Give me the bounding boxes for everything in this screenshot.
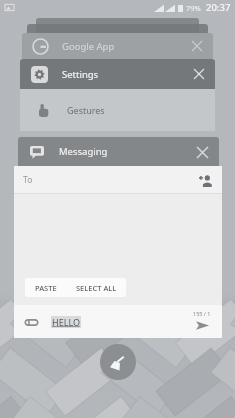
button[interactable]: Add recipient <box>194 169 216 191</box>
button[interactable]: Google App <box>22 33 213 59</box>
staticText: 155 / 1 <box>193 310 211 317</box>
staticText: To <box>23 174 33 186</box>
button[interactable]: Messaging <box>18 137 219 166</box>
staticText: Settings <box>62 68 99 81</box>
staticText: SELECT ALL <box>76 283 117 293</box>
staticText: HELLO <box>52 316 80 328</box>
button[interactable]: Gestures <box>20 89 215 131</box>
button[interactable]: PASTE <box>25 278 67 297</box>
button[interactable]: Close Messaging <box>189 139 215 165</box>
button[interactable] <box>27 24 208 52</box>
button[interactable]: Attach <box>19 310 43 334</box>
button[interactable]: Clear all <box>100 344 136 380</box>
button[interactable]: Close Google App <box>185 34 209 58</box>
button[interactable]: Send <box>185 305 219 338</box>
staticText: Gestures <box>67 104 105 116</box>
button[interactable]: Close Settings <box>187 62 211 86</box>
button[interactable]: HELLO <box>51 305 185 338</box>
button[interactable]: To <box>14 166 222 193</box>
staticText: Messaging <box>59 145 108 158</box>
staticText: PASTE <box>35 283 57 293</box>
staticText: 79% <box>186 3 201 13</box>
button[interactable] <box>36 18 199 48</box>
staticText: Google App <box>62 40 115 53</box>
staticText: 20:37 <box>206 1 231 14</box>
button[interactable]: Settings <box>20 59 215 89</box>
button[interactable]: SELECT ALL <box>67 278 126 297</box>
